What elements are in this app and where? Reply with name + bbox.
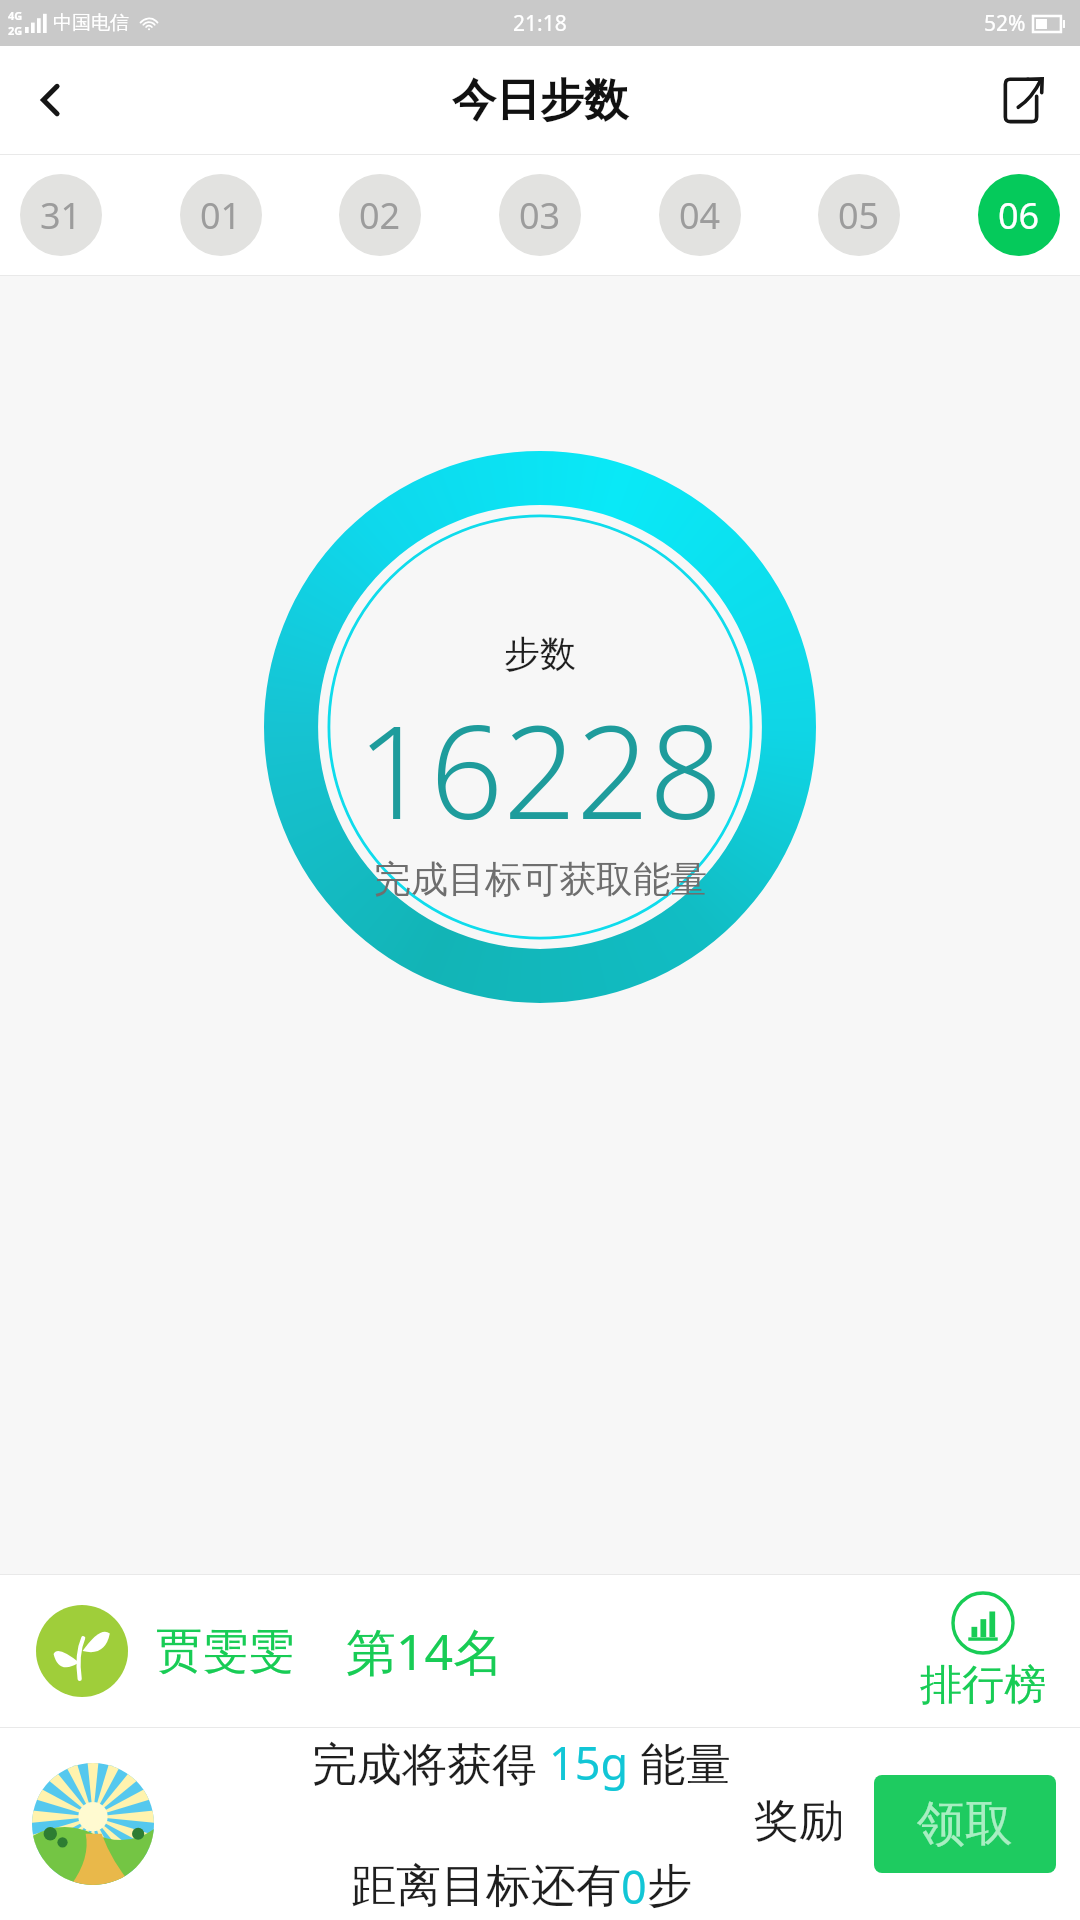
staticText: 领取 [917,1794,1013,1854]
staticText: 第14名 [346,1617,504,1685]
staticText: 步 [647,1858,692,1915]
staticText: 31 [40,191,82,240]
button[interactable]: 排行榜 [920,1591,1046,1712]
staticText: 02 [359,191,401,240]
staticText: 03 [519,191,561,240]
staticText: 奖励 [754,1793,844,1850]
staticText: 完成将获得 [312,1732,549,1793]
button[interactable]: 05 [818,174,900,256]
button[interactable]: Share [988,67,1054,133]
staticText: 05 [838,191,880,240]
staticText: 今日步数 [452,73,628,128]
staticText: 距离目标还有 [351,1858,621,1915]
staticText: 52% [984,9,1026,38]
staticText: 15g [549,1732,629,1793]
staticText: 0 [621,1856,647,1917]
staticText: 21:18 [513,9,567,38]
staticText: 中国电信 [53,11,129,35]
button[interactable]: 31 [20,174,102,256]
staticText: 能量 [629,1732,731,1793]
button[interactable]: 领取 [874,1775,1056,1873]
staticText: 排行榜 [920,1659,1046,1712]
button[interactable]: 06 [978,174,1060,256]
button[interactable]: 贾雯雯 [0,1575,1080,1727]
staticText: 01 [200,191,242,240]
staticText: 06 [998,191,1040,240]
staticText: 完成目标可获取能量 [374,856,707,903]
staticText: 4G [8,8,23,23]
staticText: 2G [8,23,23,38]
staticText: 步数 [504,631,576,676]
staticText: 贾雯雯 [156,1622,294,1680]
button[interactable]: 04 [659,174,741,256]
staticText: 04 [679,191,721,240]
button[interactable]: Back [16,65,86,135]
button[interactable]: 02 [339,174,421,256]
button[interactable]: 01 [180,174,262,256]
staticText: 16228 [357,682,723,856]
button[interactable]: 03 [499,174,581,256]
